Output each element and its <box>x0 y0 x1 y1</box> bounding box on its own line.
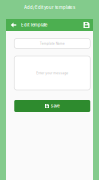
staticText: Template Name <box>40 42 65 45</box>
button[interactable]: Save <box>14 100 90 112</box>
staticText: Add/Edit your templates <box>24 5 75 10</box>
staticText: Edit Template <box>21 22 47 27</box>
button[interactable]: Save template <box>80 19 93 31</box>
button[interactable]: Back <box>6 19 21 31</box>
staticText: Enter your message <box>36 71 68 75</box>
staticText: Save <box>50 104 59 108</box>
